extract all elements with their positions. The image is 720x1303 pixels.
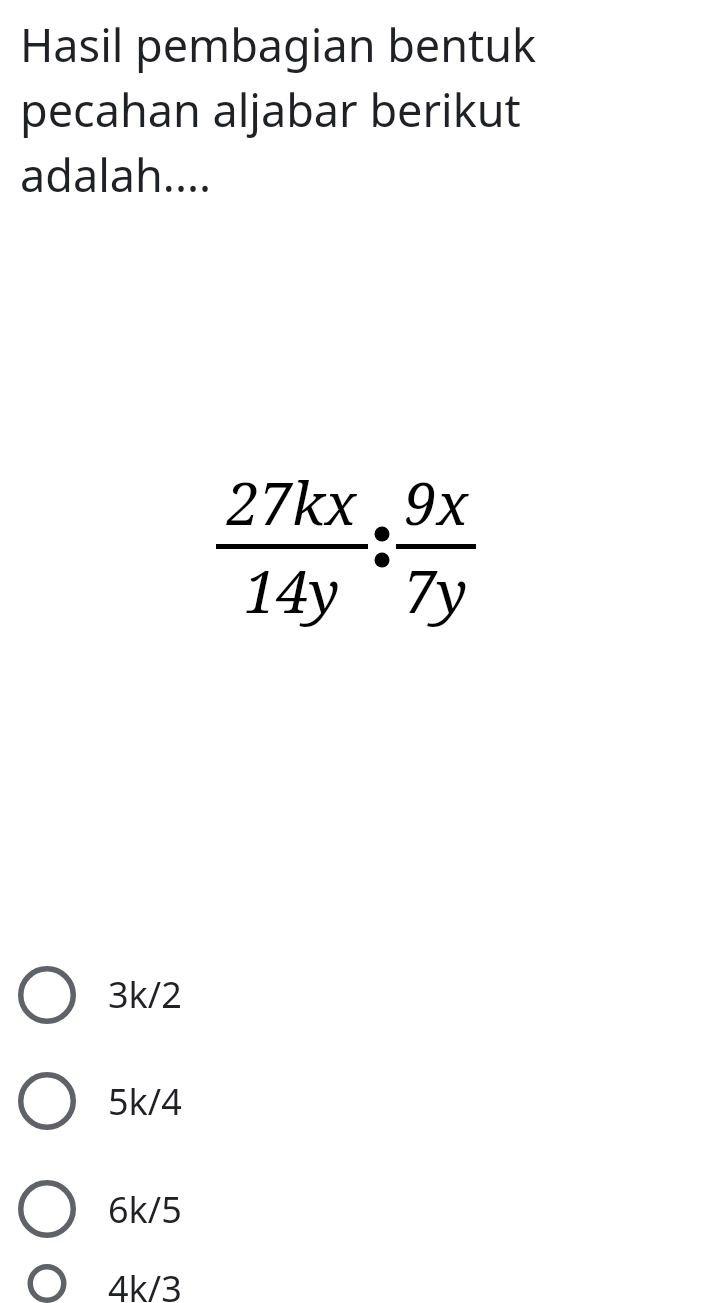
button[interactable]: Select answer 3k/2	[0, 941, 720, 1048]
staticText: 6k/5	[108, 1185, 182, 1234]
staticText: 3k/2	[108, 970, 182, 1019]
staticText: 7y	[404, 551, 468, 630]
button[interactable]: Select answer 5k/4	[0, 1048, 720, 1154]
staticText: 27kx	[227, 463, 357, 542]
staticText: 9x	[404, 463, 469, 542]
staticText: 4k/3	[108, 1264, 182, 1303]
button[interactable]: Select answer 4k/3	[0, 1264, 720, 1303]
other: Select answer 6k/5	[18, 1180, 76, 1238]
other: Select answer 3k/2	[18, 966, 76, 1024]
staticText: Hasil pembagian bentuk pecahan aljabar b…	[20, 14, 706, 205]
other: Select answer 5k/4	[18, 1072, 76, 1130]
staticText: 14y	[244, 551, 340, 630]
staticText: 5k/4	[108, 1077, 182, 1126]
other: Select answer 4k/3	[18, 1264, 76, 1303]
button[interactable]: Select answer 6k/5	[0, 1154, 720, 1264]
